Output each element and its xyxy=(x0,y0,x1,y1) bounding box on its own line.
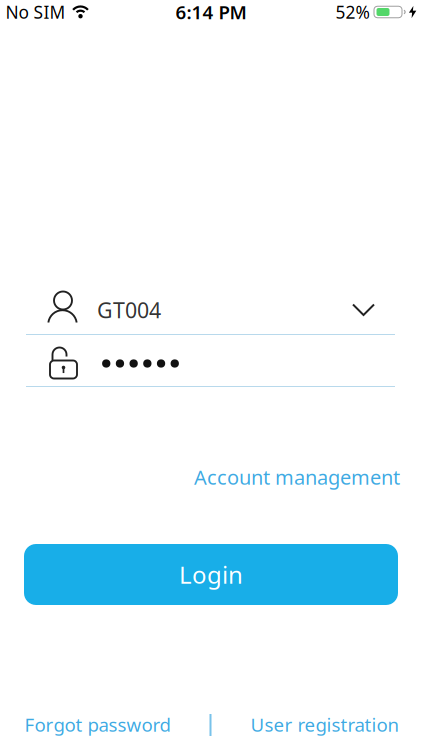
staticText: Forgot password xyxy=(24,712,170,737)
staticText: User registration xyxy=(250,712,399,737)
button[interactable]: User registration xyxy=(250,712,399,737)
button[interactable]: Forgot password xyxy=(24,712,170,737)
button[interactable]: Login xyxy=(24,544,398,605)
staticText: 6:14 PM xyxy=(175,0,246,24)
staticText: 52% xyxy=(335,0,369,23)
staticText: GT004 xyxy=(97,296,161,324)
staticText: No SIM xyxy=(5,0,65,23)
button[interactable]: Account management xyxy=(194,464,400,490)
staticText: Login xyxy=(179,559,243,590)
button[interactable]: Show accounts xyxy=(345,294,381,324)
staticText: Account management xyxy=(194,464,400,490)
